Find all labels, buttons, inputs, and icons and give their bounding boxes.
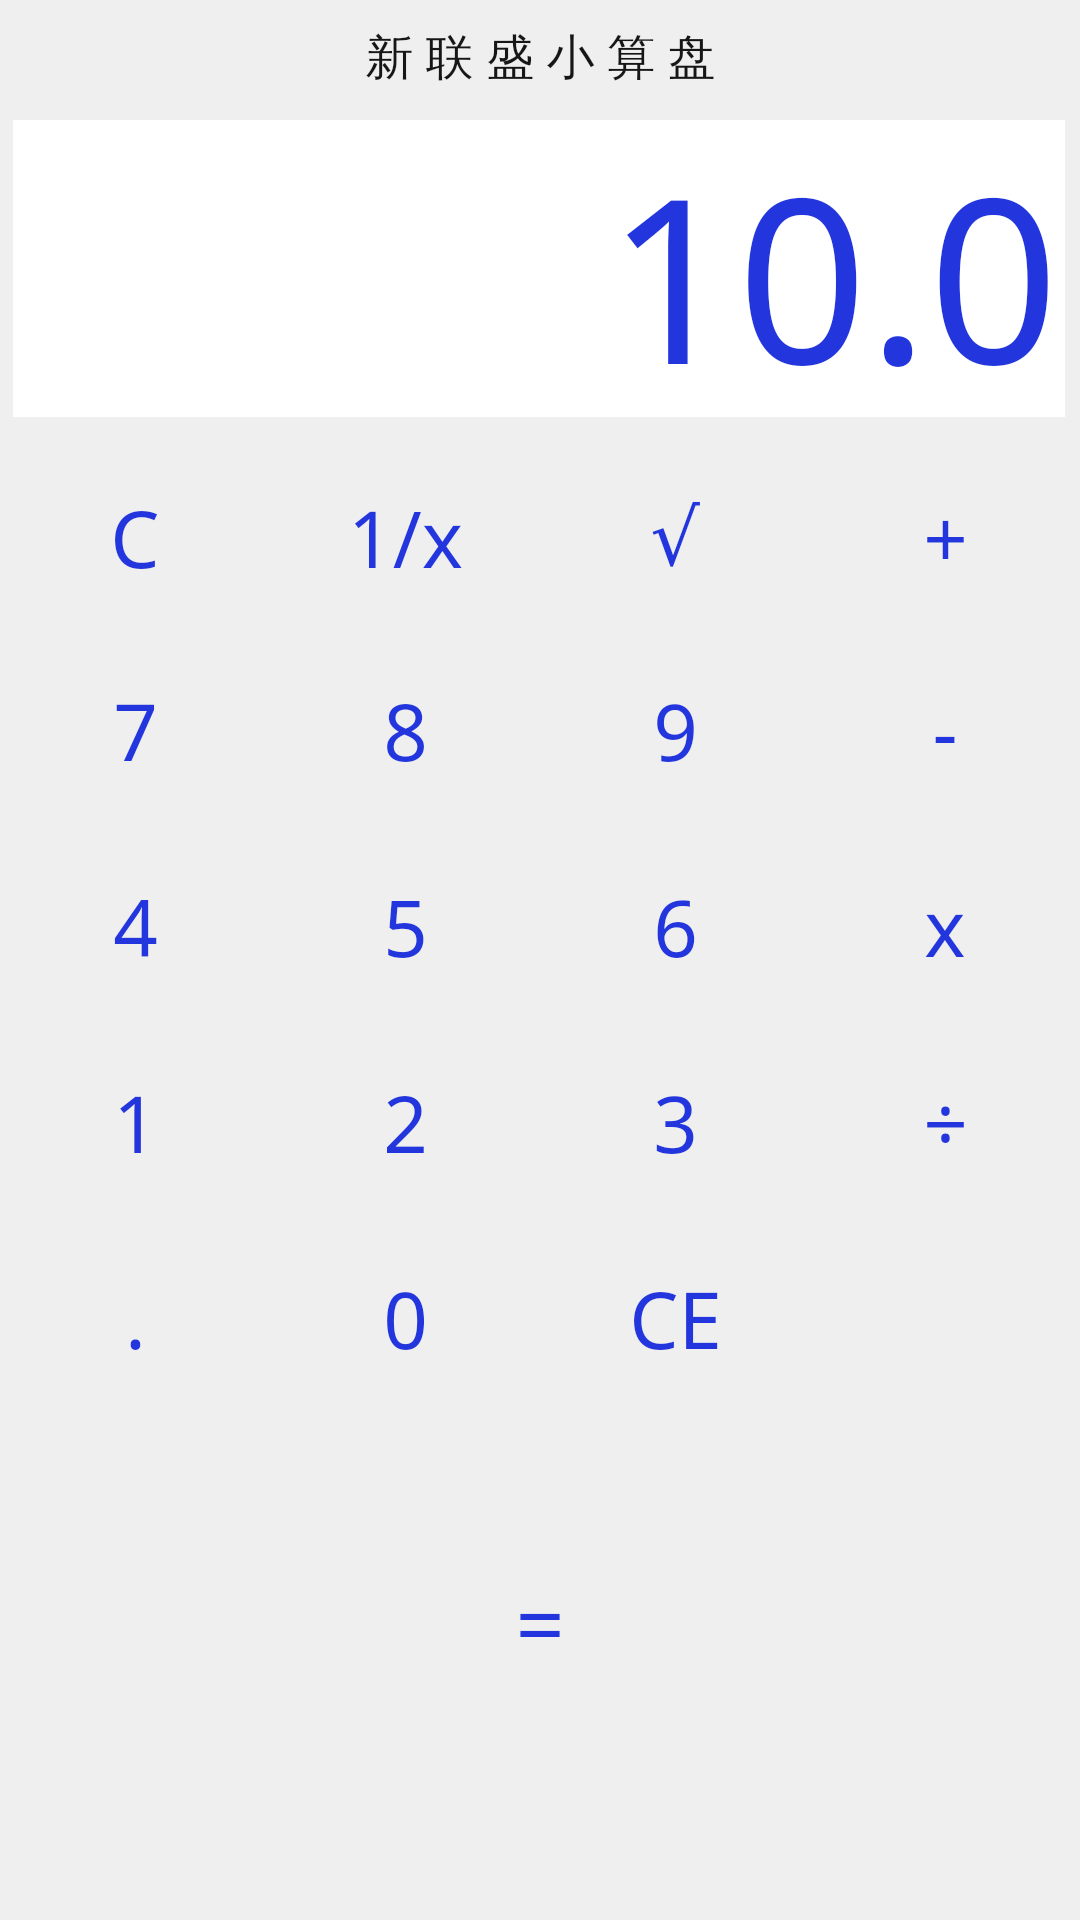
button[interactable]: 0 xyxy=(270,1221,540,1417)
button[interactable]: . xyxy=(0,1221,270,1417)
button[interactable]: 6 xyxy=(540,829,810,1025)
button[interactable]: 4 xyxy=(0,829,270,1025)
staticText: 新 联 盛 小 算 盘 xyxy=(365,23,716,89)
button[interactable]: 2 xyxy=(270,1025,540,1221)
button[interactable]: 9 xyxy=(540,633,810,829)
button[interactable]: 1 xyxy=(0,1025,270,1221)
button[interactable]: 10.0 xyxy=(13,120,1065,417)
button[interactable]: + xyxy=(810,443,1080,633)
staticText: 8 xyxy=(383,678,428,784)
staticText: 9 xyxy=(653,678,698,784)
staticText: C xyxy=(110,485,160,591)
staticText: 7 xyxy=(113,678,158,784)
staticText: - xyxy=(932,678,958,784)
button[interactable]: ÷ xyxy=(810,1025,1080,1221)
button[interactable]: √ xyxy=(540,443,810,633)
staticText: 10.0 xyxy=(606,120,1059,409)
staticText: 3 xyxy=(653,1070,698,1176)
button[interactable]: Equals xyxy=(405,1547,675,1697)
staticText: CE xyxy=(629,1266,722,1372)
staticText: 6 xyxy=(653,874,698,980)
staticText: . xyxy=(125,1266,146,1372)
button[interactable]: 7 xyxy=(0,633,270,829)
button[interactable]: - xyxy=(810,633,1080,829)
staticText: 1 xyxy=(113,1070,158,1176)
staticText: √ xyxy=(650,493,700,584)
button[interactable]: 3 xyxy=(540,1025,810,1221)
button[interactable]: x xyxy=(810,829,1080,1025)
staticText: 2 xyxy=(383,1070,428,1176)
button[interactable]: 1/x xyxy=(270,443,540,633)
button[interactable]: 5 xyxy=(270,829,540,1025)
button[interactable]: 8 xyxy=(270,633,540,829)
staticText: x xyxy=(924,874,966,980)
staticText: ÷ xyxy=(923,1070,968,1176)
staticText: + xyxy=(923,485,968,591)
staticText: 4 xyxy=(113,874,158,980)
staticText: 5 xyxy=(383,874,428,980)
button[interactable]: CE xyxy=(540,1221,810,1417)
button[interactable]: C xyxy=(0,443,270,633)
staticText: = xyxy=(515,1564,565,1681)
staticText: 1/x xyxy=(348,485,463,591)
staticText: 0 xyxy=(383,1266,428,1372)
